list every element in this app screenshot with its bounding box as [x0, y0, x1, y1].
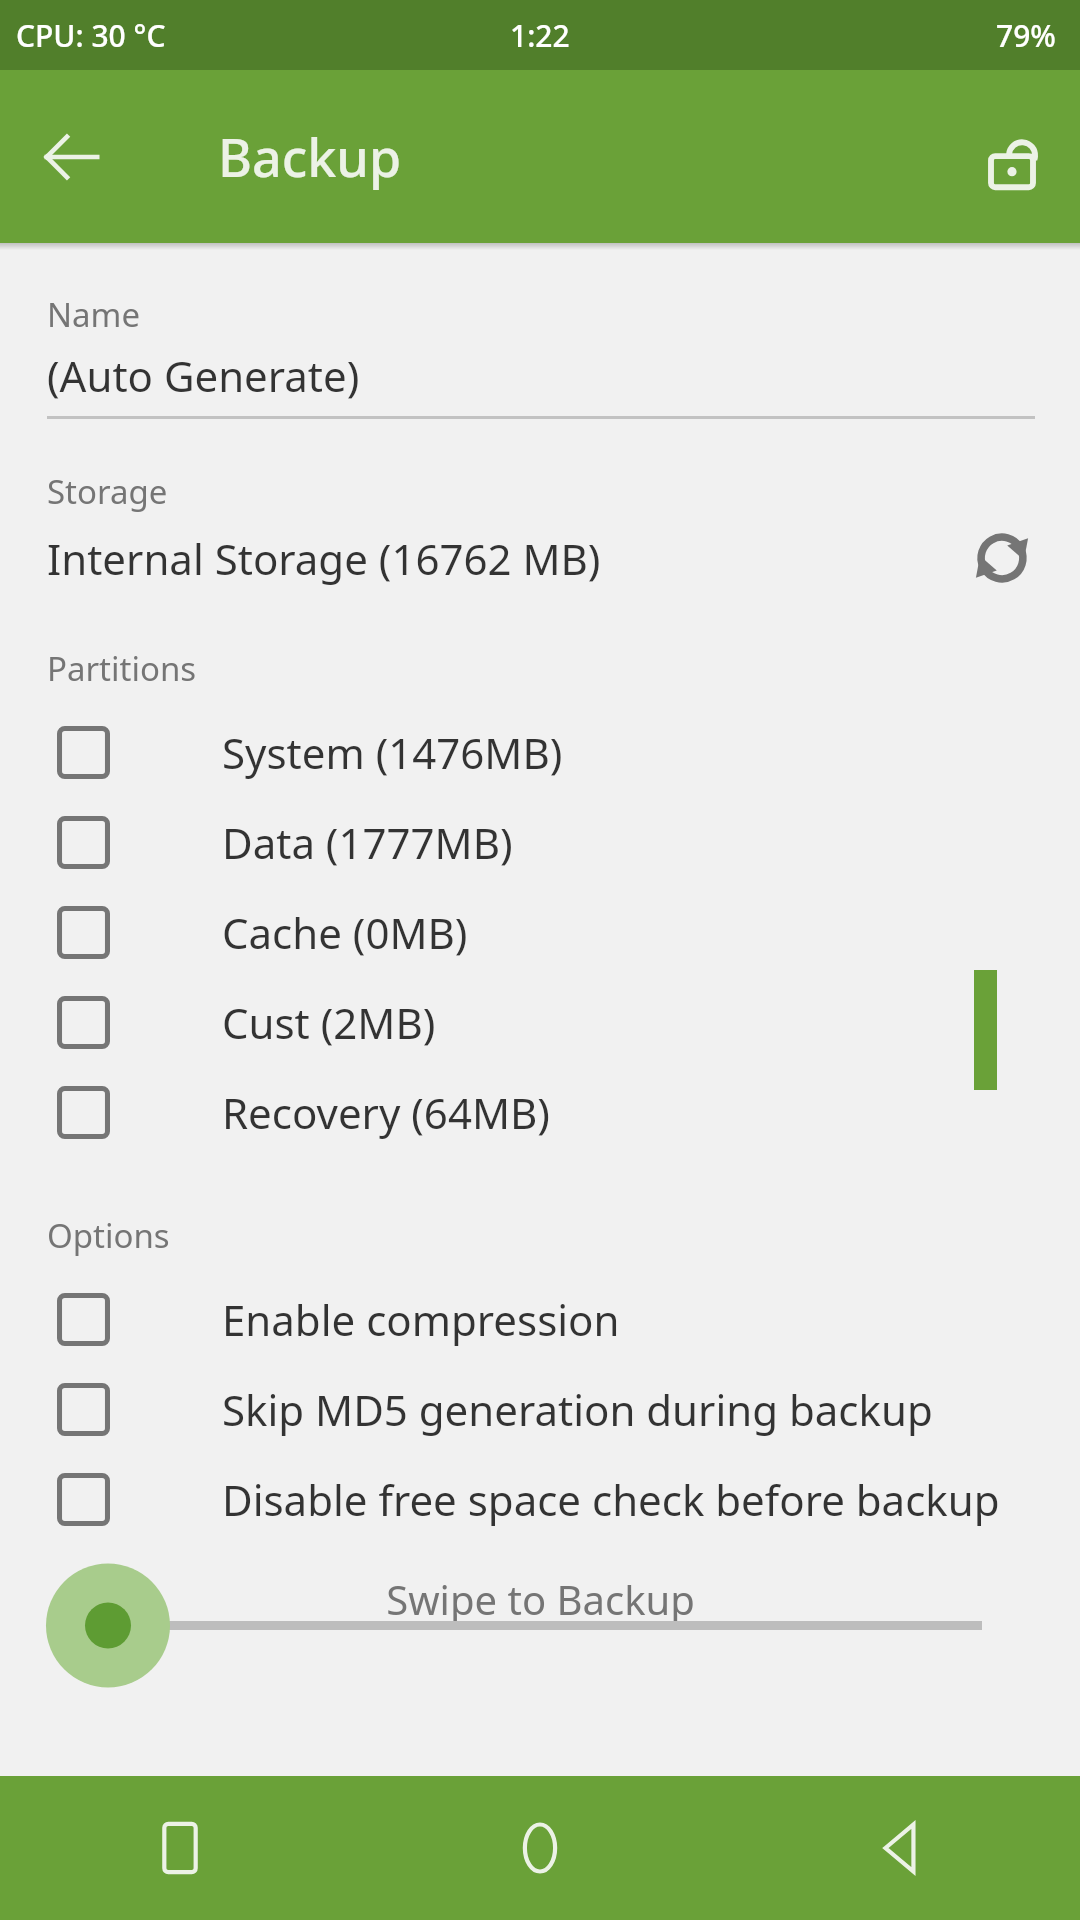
button[interactable]: Back: [30, 115, 114, 199]
staticText: Data (1777MB): [222, 814, 513, 871]
button[interactable]: Recovery (64MB): [0, 1067, 1080, 1157]
button[interactable]: System (1476MB): [0, 707, 1080, 797]
staticText: Disable free space check before backup: [222, 1471, 1000, 1528]
button[interactable]: Disable free space check before backup: [0, 1454, 1080, 1544]
button[interactable]: Home: [360, 1776, 720, 1920]
staticText: Swipe to Backup: [386, 1572, 695, 1626]
staticText: Partitions: [47, 646, 197, 691]
staticText: Internal Storage (16762 MB): [47, 530, 966, 587]
staticText: Enable compression: [222, 1291, 620, 1348]
staticText: System (1476MB): [222, 724, 563, 781]
button[interactable]: Cache (0MB): [0, 887, 1080, 977]
button[interactable]: Unlock: [970, 115, 1054, 199]
staticText: Name: [47, 292, 141, 337]
button[interactable]: Enable compression: [0, 1274, 1080, 1364]
button[interactable]: Data (1777MB): [0, 797, 1080, 887]
staticText: Cache (0MB): [222, 904, 468, 961]
staticText: Skip MD5 generation during backup: [222, 1381, 933, 1438]
staticText: Cust (2MB): [222, 994, 436, 1051]
button[interactable]: Refresh storage: [966, 522, 1038, 594]
button[interactable]: Cust (2MB): [0, 977, 1080, 1067]
staticText: (Auto Generate): [47, 347, 360, 404]
button[interactable]: Swipe to Backup: [0, 1558, 1080, 1708]
staticText: 79%: [996, 15, 1056, 56]
button[interactable]: Skip MD5 generation during backup: [0, 1364, 1080, 1454]
staticText: Recovery (64MB): [222, 1084, 550, 1141]
staticText: Backup: [218, 121, 402, 192]
staticText: CPU: 30 °C: [16, 15, 166, 56]
staticText: 1:22: [510, 15, 570, 56]
staticText: Storage: [47, 469, 168, 514]
button[interactable]: Back: [720, 1776, 1080, 1920]
button[interactable]: Recents: [0, 1776, 360, 1920]
staticText: Options: [47, 1213, 170, 1258]
